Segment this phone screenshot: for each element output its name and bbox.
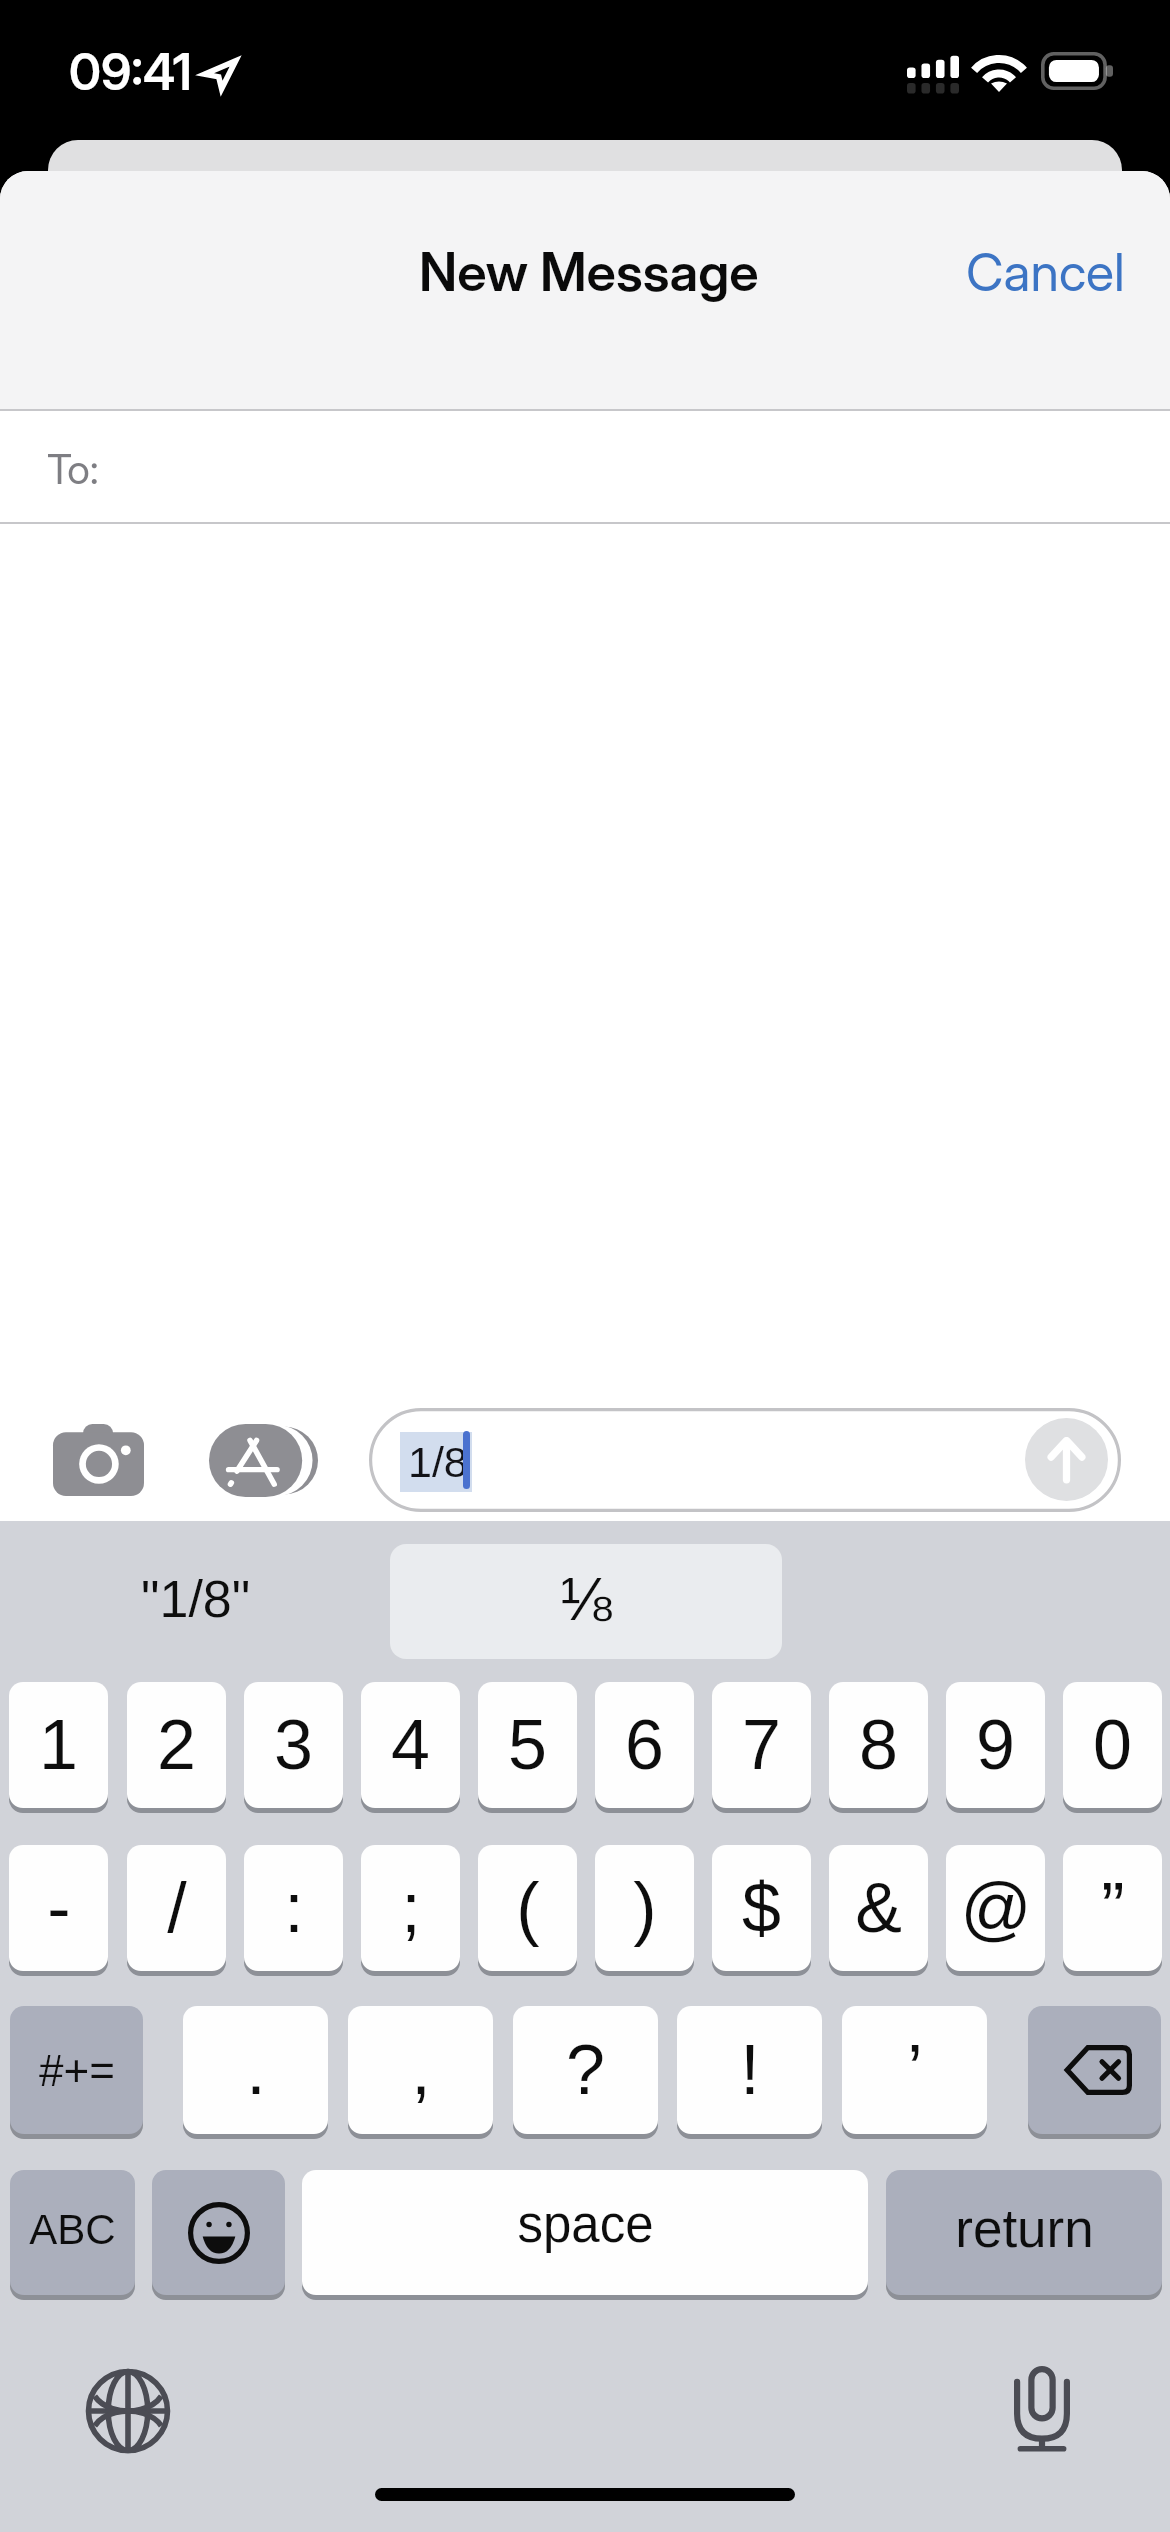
staticText: $ bbox=[742, 1869, 781, 1947]
staticText: ? bbox=[566, 2031, 605, 2109]
button[interactable]: Cancel bbox=[950, 232, 1140, 312]
button[interactable]: / bbox=[127, 1845, 226, 1971]
staticText: @ bbox=[960, 1869, 1032, 1947]
staticText: ’ bbox=[907, 2031, 923, 2109]
staticText: ⅛ bbox=[560, 1564, 612, 1633]
button[interactable]: - bbox=[9, 1845, 108, 1971]
button[interactable]: ” bbox=[1063, 1845, 1162, 1971]
button[interactable]: space bbox=[302, 2170, 868, 2295]
button[interactable]: 1 bbox=[9, 1682, 108, 1808]
button[interactable]: 0 bbox=[1063, 1682, 1162, 1808]
button[interactable]: 3 bbox=[244, 1682, 343, 1808]
button[interactable]: : bbox=[244, 1845, 343, 1971]
button[interactable]: , bbox=[348, 2006, 493, 2134]
button[interactable]: Dictate bbox=[1014, 2366, 1070, 2452]
button[interactable]: Send bbox=[1025, 1418, 1108, 1501]
staticText: 8 bbox=[859, 1706, 898, 1784]
staticText: To: bbox=[47, 444, 99, 494]
staticText: ; bbox=[401, 1869, 421, 1947]
button[interactable]: @ bbox=[946, 1845, 1045, 1971]
staticText: . bbox=[246, 2031, 266, 2109]
staticText: 1/8 bbox=[408, 1438, 468, 1486]
staticText: / bbox=[167, 1869, 187, 1947]
button[interactable] bbox=[0, 411, 1170, 522]
staticText: , bbox=[411, 2031, 431, 2109]
staticText: 0 bbox=[1093, 1706, 1132, 1784]
staticText: 5 bbox=[508, 1706, 547, 1784]
button[interactable]: ! bbox=[677, 2006, 822, 2134]
staticText: New Message bbox=[419, 240, 759, 304]
staticText: ABC bbox=[29, 2206, 116, 2253]
button[interactable]: 2 bbox=[127, 1682, 226, 1808]
staticText: - bbox=[47, 1869, 71, 1947]
button[interactable]: Change keyboard bbox=[86, 2369, 170, 2453]
button[interactable]: ABC bbox=[10, 2170, 135, 2295]
staticText: "1/8" bbox=[141, 1570, 251, 1628]
staticText: 7 bbox=[742, 1706, 781, 1784]
staticText: ” bbox=[1101, 1869, 1125, 1947]
staticText: 9 bbox=[976, 1706, 1015, 1784]
button[interactable]: ? bbox=[513, 2006, 658, 2134]
button[interactable]: 8 bbox=[829, 1682, 928, 1808]
button[interactable]: ’ bbox=[842, 2006, 987, 2134]
button[interactable]: Backspace bbox=[1028, 2006, 1161, 2134]
button[interactable]: ) bbox=[595, 1845, 694, 1971]
staticText: 1 bbox=[39, 1706, 78, 1784]
staticText: 09:41 bbox=[69, 42, 192, 102]
staticText: : bbox=[284, 1869, 304, 1947]
staticText: 6 bbox=[625, 1706, 664, 1784]
staticText: ) bbox=[633, 1869, 657, 1947]
button[interactable]: & bbox=[829, 1845, 928, 1971]
staticText: return bbox=[955, 2199, 1094, 2258]
button[interactable]: Emoji bbox=[152, 2170, 285, 2295]
button[interactable]: 9 bbox=[946, 1682, 1045, 1808]
staticText: 4 bbox=[391, 1706, 430, 1784]
button[interactable]: ; bbox=[361, 1845, 460, 1971]
staticText: ( bbox=[516, 1869, 540, 1947]
button[interactable]: ( bbox=[478, 1845, 577, 1971]
staticText: Cancel bbox=[966, 241, 1125, 304]
button[interactable]: ⅛ bbox=[390, 1544, 782, 1659]
staticText: & bbox=[855, 1869, 902, 1947]
staticText: 2 bbox=[157, 1706, 196, 1784]
button[interactable]: #+= bbox=[10, 2006, 143, 2134]
button[interactable]: return bbox=[886, 2170, 1162, 2295]
staticText: ! bbox=[740, 2031, 760, 2109]
staticText: #+= bbox=[39, 2046, 115, 2095]
button[interactable]: 4 bbox=[361, 1682, 460, 1808]
staticText: space bbox=[517, 2196, 654, 2253]
button[interactable]: 7 bbox=[712, 1682, 811, 1808]
button[interactable]: 5 bbox=[478, 1682, 577, 1808]
button[interactable]: 6 bbox=[595, 1682, 694, 1808]
button[interactable]: 1/8 bbox=[369, 1408, 1121, 1512]
staticText: 3 bbox=[274, 1706, 313, 1784]
button[interactable]: . bbox=[183, 2006, 328, 2134]
button[interactable]: Apps bbox=[209, 1424, 318, 1497]
button[interactable]: Camera bbox=[53, 1424, 144, 1496]
button[interactable]: $ bbox=[712, 1845, 811, 1971]
